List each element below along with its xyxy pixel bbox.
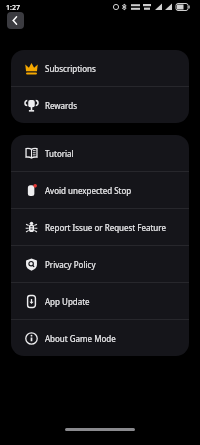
button[interactable] [7, 12, 24, 29]
button[interactable]: Rewards [11, 87, 189, 123]
staticText: Privacy Policy [45, 259, 96, 270]
staticText: 1:27 [6, 3, 20, 13]
staticText: About Game Mode [45, 333, 116, 344]
staticText: Avoid unexpected Stop [45, 185, 132, 196]
button[interactable]: Tutorial [11, 135, 189, 171]
staticText: Tutorial [45, 148, 74, 159]
button[interactable]: App Update [11, 283, 189, 319]
button[interactable]: Avoid unexpected Stop [11, 172, 189, 208]
button[interactable]: Report Issue or Request Feature [11, 209, 189, 245]
button[interactable]: Privacy Policy [11, 246, 189, 282]
staticText: Report Issue or Request Feature [45, 222, 166, 233]
staticText: Rewards [45, 100, 77, 111]
button[interactable]: Subscriptions [11, 50, 189, 86]
button[interactable]: About Game Mode [11, 320, 189, 356]
staticText: Subscriptions [45, 63, 96, 74]
staticText: App Update [45, 296, 90, 307]
